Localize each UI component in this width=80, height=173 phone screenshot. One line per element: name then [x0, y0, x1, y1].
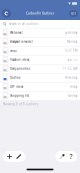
staticText: Sep 10: [67, 58, 77, 61]
button[interactable]: Edit: [69, 10, 78, 17]
button[interactable]: New outline: [7, 154, 12, 159]
staticText: DIY ideas: [10, 85, 23, 88]
button[interactable]: Script: [0, 46, 80, 55]
button[interactable]: Daily priorities: [0, 64, 80, 73]
staticText: Welcome!: [10, 31, 23, 34]
staticText: Backyard remodel: [10, 40, 33, 43]
staticText: Search in all outlines: [9, 22, 38, 26]
staticText: Outline: [10, 76, 21, 79]
button[interactable]: Backyard remodel: [0, 37, 80, 46]
staticText: 11:52 AM: [63, 67, 77, 70]
button[interactable]: Vacation ideas: [0, 55, 80, 64]
staticText: Script: [10, 49, 17, 52]
staticText: Sunday: [68, 94, 77, 97]
button[interactable]: Help: [69, 154, 73, 159]
button[interactable]: Settings: [59, 154, 65, 159]
staticText: Friday: [70, 85, 77, 88]
staticText: 9:37 PM: [65, 49, 77, 52]
staticText: Vacation ideas: [10, 58, 29, 61]
button[interactable]: Outline: [0, 73, 80, 82]
staticText: ?: [69, 152, 72, 161]
staticText: Carbonfin Outliner: [26, 12, 54, 15]
staticText: Yesterday: [65, 76, 77, 79]
button[interactable]: Shopping list: [0, 91, 80, 100]
staticText: Edit: [71, 12, 76, 15]
staticText: Daily priorities: [10, 67, 30, 70]
button[interactable]: Edit outlines: [16, 154, 21, 159]
button[interactable]: DIY ideas: [0, 82, 80, 91]
button[interactable]: Welcome!: [0, 28, 80, 37]
staticText: Monday: [67, 40, 77, 43]
staticText: Shopping list: [10, 94, 29, 97]
staticText: Showing 8 of 8 outlines: [3, 102, 38, 106]
staticText: yesterday: [65, 31, 77, 34]
button[interactable]: Sync: [2, 9, 11, 18]
